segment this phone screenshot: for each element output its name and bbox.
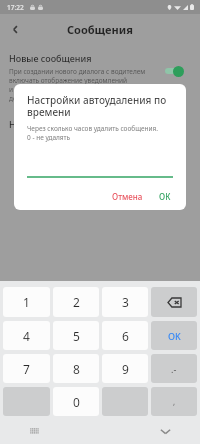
- staticText: Новые сообщения: [9, 52, 92, 64]
- button[interactable]: .-: [151, 354, 197, 383]
- button[interactable]: Отмена: [107, 188, 148, 205]
- staticText: При создании нового диалога с водителем …: [9, 67, 192, 103]
- staticText: 5: [73, 328, 80, 344]
- button[interactable]: OK: [151, 321, 197, 350]
- button[interactable]: Switch keyboard: [25, 422, 43, 440]
- staticText: Настройки автоудаления по времени: [27, 93, 167, 119]
- staticText: 2: [73, 294, 80, 310]
- staticText: OK: [168, 330, 181, 342]
- button[interactable]: 2: [53, 287, 99, 317]
- staticText: 9: [122, 361, 129, 377]
- button[interactable]: Backspace: [151, 287, 197, 317]
- button[interactable]: 0: [53, 387, 99, 416]
- staticText: 8: [73, 361, 80, 377]
- button[interactable]: 6: [102, 321, 148, 350]
- staticText: 17:22: [7, 3, 24, 12]
- button[interactable]: 3: [102, 287, 148, 317]
- button[interactable]: 4: [3, 321, 50, 350]
- staticText: Н: [9, 118, 16, 130]
- button[interactable]: [162, 64, 190, 78]
- staticText: 7: [23, 361, 30, 377]
- button[interactable]: 9: [102, 354, 148, 383]
- staticText: ОК: [159, 191, 171, 202]
- button[interactable]: Back: [0, 14, 30, 44]
- staticText: 3: [122, 294, 129, 310]
- button[interactable]: 8: [53, 354, 99, 383]
- staticText: ,: [173, 396, 176, 407]
- button[interactable]: ОК: [154, 188, 176, 205]
- staticText: Сообщения: [67, 22, 133, 37]
- staticText: Через сколько часов удалить сообщения. 0…: [27, 124, 159, 142]
- staticText: Отмена: [112, 191, 143, 202]
- button[interactable]: 5: [53, 321, 99, 350]
- button[interactable]: 1: [3, 287, 50, 317]
- staticText: .-: [171, 363, 177, 375]
- button[interactable]: Hide keyboard: [155, 421, 175, 441]
- staticText: 0: [73, 394, 80, 410]
- staticText: 4: [23, 328, 30, 344]
- staticText: 6: [122, 328, 129, 344]
- button[interactable]: 7: [3, 354, 50, 383]
- staticText: 1: [23, 294, 30, 310]
